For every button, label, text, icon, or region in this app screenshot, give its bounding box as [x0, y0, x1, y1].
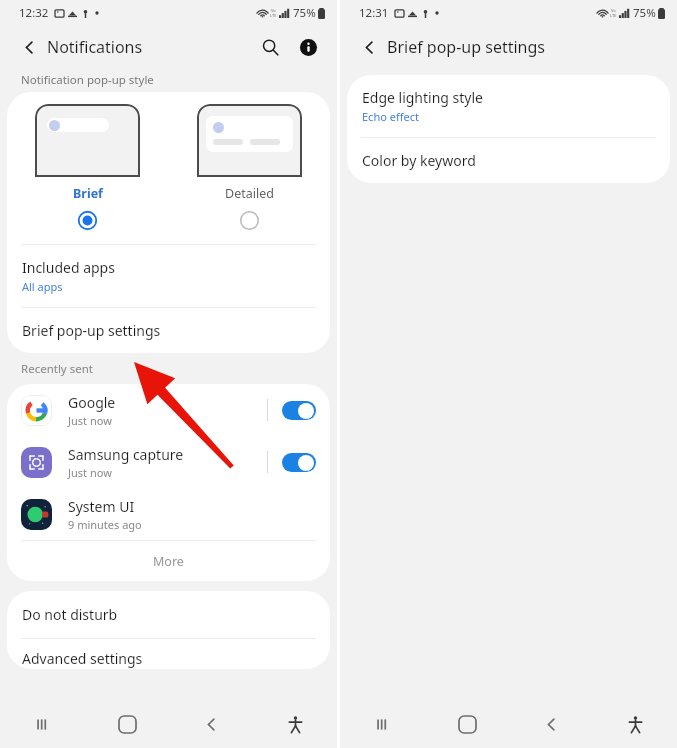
staticText: Color by keyword	[362, 151, 476, 170]
staticText: Brief pop-up settings	[22, 321, 161, 340]
button[interactable]: Google	[7, 384, 330, 436]
button[interactable]: Advanced settings	[7, 639, 330, 669]
staticText: System UI	[68, 497, 135, 516]
button[interactable]: Brief	[7, 104, 168, 230]
button[interactable]: More	[7, 541, 330, 581]
button[interactable]: Recents	[0, 701, 85, 748]
staticText: LTE	[270, 13, 277, 18]
button[interactable]: Brief pop-up settings	[7, 308, 330, 353]
button[interactable]: Recents	[340, 701, 425, 748]
button[interactable]: Toggle Samsung capture	[282, 453, 316, 472]
staticText: LTE	[610, 13, 617, 18]
staticText: Vo	[611, 8, 616, 13]
staticText: Brief pop-up settings	[387, 36, 545, 58]
staticText: All apps	[22, 279, 63, 294]
staticText: 75%	[293, 5, 316, 21]
staticText: Edge lighting style	[362, 88, 484, 107]
staticText: 12:32	[19, 5, 49, 21]
staticText: Notifications	[47, 36, 143, 58]
staticText: Vo	[271, 8, 276, 13]
staticText: Advanced settings	[22, 649, 143, 668]
button[interactable]: Home	[85, 701, 169, 748]
button[interactable]: Do not disturb	[7, 591, 330, 638]
staticText: Do not disturb	[22, 605, 118, 624]
button[interactable]: System UI	[7, 488, 330, 540]
button[interactable]: Included apps	[7, 245, 330, 307]
staticText: Echo effect	[362, 109, 419, 124]
staticText: Brief	[73, 185, 103, 202]
button[interactable]: Back	[13, 31, 45, 63]
button[interactable]: Samsung capture	[7, 436, 330, 488]
staticText: 9 minutes ago	[68, 517, 142, 532]
staticText: Just now	[68, 465, 112, 480]
staticText: Detailed	[225, 185, 274, 202]
staticText: Just now	[68, 413, 112, 428]
staticText: Recently sent	[21, 361, 93, 377]
button[interactable]: Toggle Google	[282, 401, 316, 420]
staticText: 75%	[633, 5, 656, 21]
button[interactable]: Color by keyword	[347, 138, 670, 183]
button[interactable]: Information	[292, 31, 324, 63]
staticText: Notification pop-up style	[21, 72, 154, 88]
button[interactable]: Back	[353, 31, 385, 63]
staticText: Included apps	[22, 258, 115, 277]
button[interactable]: Detailed	[168, 104, 330, 230]
button[interactable]: Search	[254, 31, 286, 63]
staticText: Google	[68, 393, 116, 412]
staticText: 12:31	[359, 5, 389, 21]
staticText: Samsung capture	[68, 445, 184, 464]
button[interactable]: Edge lighting style	[347, 75, 670, 137]
button[interactable]: Home	[425, 701, 509, 748]
button[interactable]: Accessibility	[593, 701, 677, 748]
button[interactable]: Accessibility	[253, 701, 337, 748]
button[interactable]: Back	[169, 701, 253, 748]
staticText: More	[153, 553, 184, 570]
button[interactable]: Back	[509, 701, 593, 748]
